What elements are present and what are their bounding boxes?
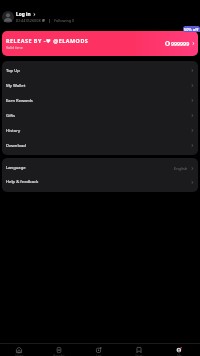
- button[interactable]: Top Up: [2, 63, 198, 78]
- staticText: Valid time: [6, 45, 23, 50]
- staticText: 999999: [171, 40, 190, 47]
- button[interactable]: Log in: [0, 5, 200, 29]
- staticText: Following 0: [54, 18, 75, 23]
- staticText: Language: [6, 165, 26, 171]
- staticText: Top Up: [6, 68, 20, 74]
- button[interactable]: RELEASE BY -♥ @ELAMODS: [2, 31, 198, 56]
- button[interactable]: Store: [119, 344, 159, 356]
- button[interactable]: Earn Rewards: [2, 93, 198, 108]
- button[interactable]: Language: [2, 161, 198, 175]
- staticText: RELEASE BY -♥ @ELAMODS: [6, 37, 89, 44]
- staticText: Store: [135, 354, 143, 356]
- button[interactable]: My Wallet: [2, 78, 198, 93]
- button[interactable]: Gifts: [2, 108, 198, 123]
- button[interactable]: Download: [2, 138, 198, 153]
- staticText: My Wallet: [6, 83, 26, 89]
- button[interactable]: Home: [0, 344, 39, 356]
- button[interactable]: Profile: [159, 344, 199, 356]
- staticText: Earn Rewards: [6, 98, 33, 104]
- staticText: Benefits: [53, 354, 65, 356]
- staticText: Download: [6, 143, 26, 149]
- staticText: Log in: [16, 11, 31, 18]
- staticText: Home: [15, 354, 24, 356]
- button[interactable]: Benefits: [39, 344, 79, 356]
- staticText: Me: [177, 354, 182, 356]
- staticText: English: [174, 166, 188, 171]
- button[interactable]: Help & feedback: [2, 175, 198, 189]
- staticText: 50% off: [184, 27, 199, 32]
- staticText: Live: [96, 354, 102, 356]
- button[interactable]: Live: [79, 344, 119, 356]
- staticText: Gifts: [6, 113, 16, 119]
- button[interactable]: History: [2, 123, 198, 138]
- staticText: Help & feedback: [6, 179, 39, 185]
- staticText: History: [6, 128, 21, 134]
- staticText: ID:443526008: [16, 18, 41, 23]
